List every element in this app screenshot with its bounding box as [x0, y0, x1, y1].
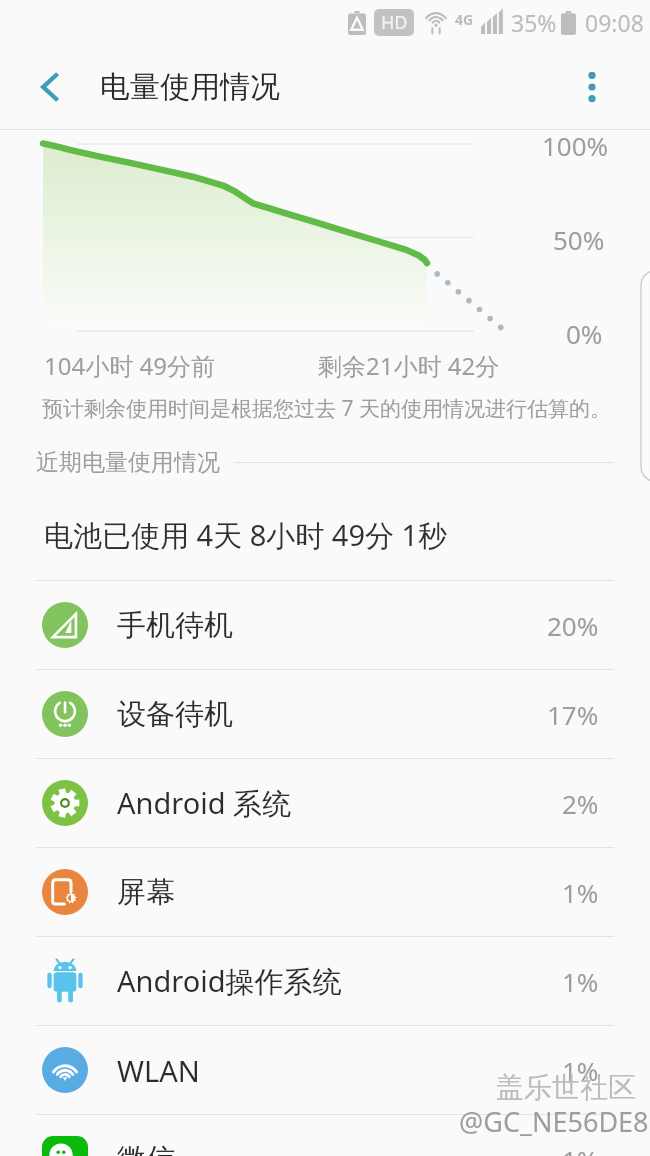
staticText: 1%	[562, 964, 599, 999]
staticText: 2%	[562, 786, 599, 821]
staticText: 1%	[562, 1053, 599, 1088]
staticText: 预计剩余使用时间是根据您过去 7 天的使用情况进行估算的。	[42, 394, 611, 423]
staticText: Android 系统	[117, 783, 292, 823]
staticText: 104小时 49分前	[44, 349, 215, 382]
staticText: 1%	[562, 875, 599, 910]
staticText: HD	[381, 10, 408, 35]
button[interactable]: More options	[556, 45, 628, 129]
staticText: 0%	[566, 316, 603, 351]
staticText: 09:08	[585, 7, 644, 38]
button[interactable]: Android操作系统	[0, 937, 650, 1025]
staticText: 1%	[562, 1142, 599, 1156]
staticText: 17%	[547, 697, 599, 732]
staticText: 电量使用情况	[100, 68, 280, 106]
button[interactable]: WLAN	[0, 1026, 650, 1114]
staticText: 屏幕	[117, 874, 175, 911]
staticText: 微信	[117, 1141, 175, 1156]
staticText: 50%	[553, 222, 605, 257]
staticText: WLAN	[117, 1051, 200, 1090]
staticText: 20%	[547, 608, 599, 643]
staticText: Android操作系统	[117, 961, 342, 1001]
button[interactable]: 设备待机	[0, 670, 650, 758]
button[interactable]: 微信	[0, 1115, 650, 1156]
staticText: 100%	[542, 128, 609, 163]
staticText: 剩余21小时 42分	[318, 349, 500, 382]
button[interactable]: 屏幕	[0, 848, 650, 936]
staticText: 手机待机	[117, 607, 233, 644]
staticText: 盖乐世社区	[496, 1070, 636, 1105]
staticText: @GC_NE56DE8	[459, 1103, 649, 1140]
staticText: 近期电量使用情况	[36, 448, 220, 477]
button[interactable]: Android 系统	[0, 759, 650, 847]
staticText: 设备待机	[117, 696, 233, 733]
staticText: 4G	[455, 10, 474, 29]
staticText: 电池已使用 4天 8小时 49分 1秒	[44, 515, 448, 555]
button[interactable]: 手机待机	[0, 581, 650, 669]
button[interactable]: Back	[13, 45, 85, 129]
staticText: 35%	[511, 7, 557, 38]
